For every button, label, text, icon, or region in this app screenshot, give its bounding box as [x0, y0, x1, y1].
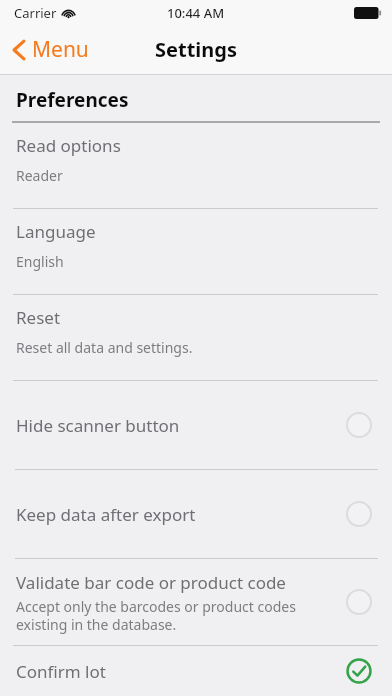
- button[interactable]: Read options: [0, 123, 392, 196]
- staticText: Read options: [16, 134, 121, 157]
- button[interactable]: Language: [0, 209, 392, 282]
- button[interactable]: Validate bar code or product code: [0, 559, 392, 645]
- staticText: Carrier: [14, 4, 57, 22]
- button[interactable]: Keep data after export: [0, 470, 392, 558]
- staticText: Language: [16, 220, 96, 243]
- staticText: Hide scanner button: [16, 414, 180, 437]
- staticText: Settings: [155, 36, 237, 63]
- staticText: Keep data after export: [16, 503, 196, 526]
- button[interactable]: Reset: [0, 295, 392, 368]
- staticText: Confirm lot: [16, 660, 106, 683]
- staticText: Reset: [16, 306, 61, 329]
- staticText: Reader: [16, 166, 63, 185]
- staticText: Preferences: [16, 87, 129, 113]
- button[interactable]: Hide scanner button: [0, 381, 392, 469]
- button[interactable]: Menu: [0, 29, 101, 70]
- staticText: Menu: [32, 35, 89, 64]
- staticText: Reset all data and settings.: [16, 338, 193, 357]
- button[interactable]: Confirm lot: [0, 646, 392, 696]
- staticText: 10:44 AM: [167, 4, 225, 22]
- staticText: English: [16, 252, 64, 271]
- staticText: Validate bar code or product code: [16, 571, 286, 594]
- staticText: Accept only the barcodes or product code…: [16, 597, 296, 634]
